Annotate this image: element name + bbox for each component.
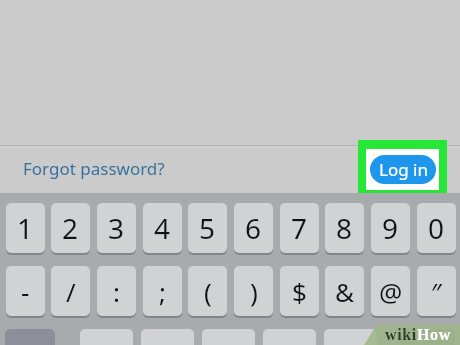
staticText: Log in (379, 158, 428, 181)
button[interactable]: $ (280, 266, 319, 316)
button[interactable]: 7 (280, 203, 319, 253)
staticText: 7 (291, 209, 308, 247)
staticText: Forgot password? (23, 157, 165, 180)
staticText: How (417, 326, 451, 344)
button[interactable]: ″ (417, 266, 456, 316)
staticText: 8 (336, 209, 353, 247)
staticText: 5 (199, 209, 216, 247)
button[interactable]: 2 (51, 203, 90, 253)
button[interactable]: 1 (6, 203, 45, 253)
staticText: 3 (108, 209, 125, 247)
staticText: 9 (382, 209, 399, 247)
button[interactable]: ( (188, 266, 227, 316)
staticText: 4 (154, 209, 171, 247)
button[interactable]: - (6, 266, 45, 316)
button[interactable]: 3 (97, 203, 136, 253)
button[interactable]: ; (143, 266, 182, 316)
staticText: : (113, 274, 120, 309)
button[interactable]: / (51, 266, 90, 316)
button[interactable] (400, 329, 455, 345)
button[interactable]: 0 (417, 203, 456, 253)
staticText: 6 (245, 209, 262, 247)
button[interactable]: ) (234, 266, 273, 316)
staticText: 0 (428, 209, 445, 247)
staticText: / (66, 274, 76, 309)
button[interactable]: . (80, 329, 133, 345)
staticText: ; (159, 274, 166, 309)
button[interactable]: @ (371, 266, 410, 316)
staticText: ″ (431, 274, 442, 309)
button[interactable]: 8 (325, 203, 364, 253)
button[interactable]: , (141, 329, 194, 345)
button[interactable]: ? (202, 329, 255, 345)
button[interactable]: Log in (370, 155, 436, 184)
button[interactable]: Forgot password? (13, 151, 175, 186)
button[interactable]: 9 (371, 203, 410, 253)
staticText: - (21, 274, 30, 309)
button[interactable]: 4 (143, 203, 182, 253)
button[interactable]: 6 (234, 203, 273, 253)
staticText: ( (204, 274, 212, 309)
staticText: ) (250, 274, 258, 309)
staticText: $ (292, 274, 307, 309)
staticText: @ (379, 274, 403, 309)
staticText: 1 (17, 209, 34, 247)
staticText: wiki (385, 326, 417, 344)
button[interactable]: & (325, 266, 364, 316)
button[interactable]: ' (324, 329, 377, 345)
staticText: & (335, 274, 355, 309)
staticText: 2 (62, 209, 79, 247)
button[interactable]: : (97, 266, 136, 316)
button[interactable]: ! (263, 329, 316, 345)
button[interactable]: 5 (188, 203, 227, 253)
